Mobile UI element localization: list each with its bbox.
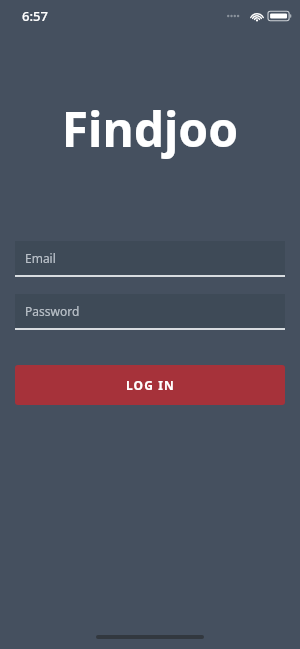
staticText: Findjoo [0, 96, 300, 161]
button[interactable]: Email [15, 241, 285, 277]
button[interactable]: LOG IN [15, 365, 285, 405]
staticText: LOG IN [126, 377, 175, 393]
button[interactable]: Password [15, 294, 285, 330]
staticText: 6:57 [22, 7, 48, 25]
staticText: Password [25, 303, 80, 319]
staticText: Email [25, 250, 56, 266]
